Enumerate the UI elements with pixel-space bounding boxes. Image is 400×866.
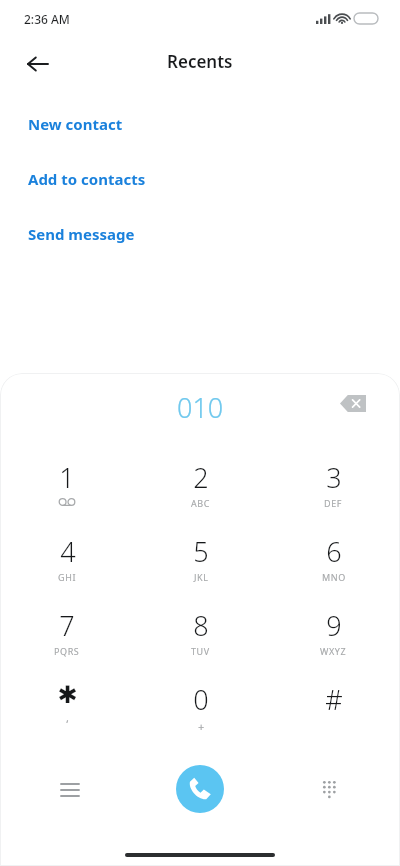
staticText: 1 — [59, 459, 75, 496]
button[interactable]: 1 — [0, 451, 134, 525]
button[interactable]: 9 — [267, 599, 400, 673]
staticText: 010 — [177, 389, 224, 426]
button[interactable]: Backspace — [332, 388, 374, 418]
staticText: 7 — [59, 607, 75, 644]
button[interactable]: 5 — [134, 525, 267, 599]
staticText: Send message — [28, 224, 135, 244]
button[interactable]: # — [267, 673, 400, 747]
staticText: # — [325, 681, 343, 718]
button[interactable]: Add to contacts — [0, 151, 400, 206]
staticText: TUV — [191, 645, 210, 657]
staticText: ABC — [191, 497, 211, 509]
button[interactable]: Call log options — [46, 766, 94, 814]
staticText: , — [66, 710, 70, 725]
button[interactable]: ✱ — [0, 673, 134, 747]
button[interactable]: Back — [16, 42, 60, 86]
button[interactable]: 4 — [0, 525, 134, 599]
staticText: 2:36 AM — [24, 11, 70, 27]
button[interactable]: 7 — [0, 599, 134, 673]
staticText: ✱ — [57, 681, 78, 709]
staticText: DEF — [324, 497, 343, 509]
staticText: WXYZ — [320, 645, 347, 657]
button[interactable]: 6 — [267, 525, 400, 599]
staticText: 5 — [193, 533, 209, 570]
button[interactable]: 2 — [134, 451, 267, 525]
staticText: 3 — [326, 459, 342, 496]
button[interactable]: Keypad — [306, 766, 354, 814]
staticText: 6 — [326, 533, 342, 570]
staticText: 2 — [193, 459, 209, 496]
staticText: 9 — [326, 607, 342, 644]
staticText: GHI — [58, 571, 77, 583]
button[interactable]: 8 — [134, 599, 267, 673]
button[interactable]: Call — [176, 765, 224, 813]
staticText: Add to contacts — [28, 169, 146, 189]
staticText: + — [198, 719, 205, 734]
staticText: JKL — [194, 571, 209, 583]
button[interactable]: New contact — [0, 96, 400, 151]
button[interactable]: Send message — [0, 206, 400, 261]
staticText: MNO — [322, 571, 346, 583]
button[interactable]: 3 — [267, 451, 400, 525]
staticText: 0 — [193, 681, 209, 718]
staticText: Recents — [167, 50, 233, 73]
staticText: 4 — [60, 533, 76, 570]
button[interactable]: 0 — [134, 673, 267, 747]
staticText: 8 — [193, 607, 209, 644]
staticText: PQRS — [54, 645, 80, 657]
staticText: New contact — [28, 114, 123, 134]
